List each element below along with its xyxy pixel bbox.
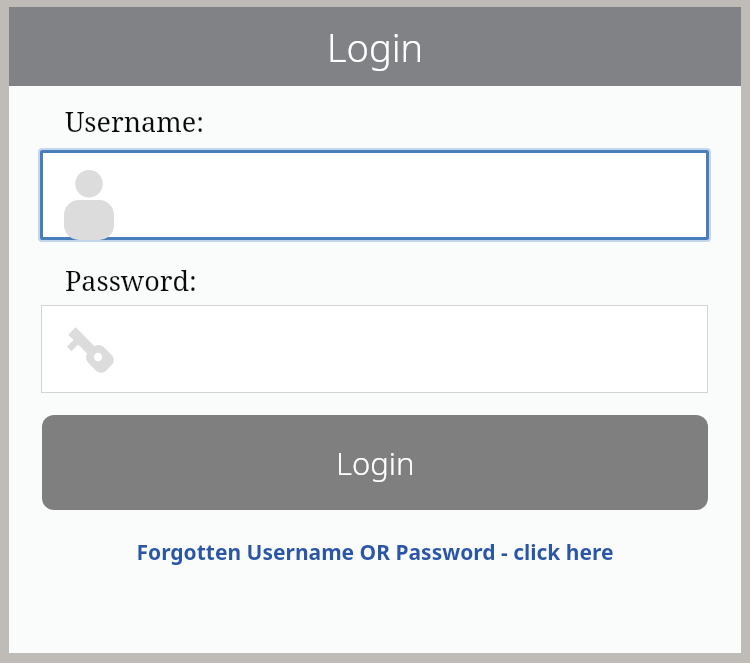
button[interactable]: Forgotten Username OR Password - click h… bbox=[9, 538, 741, 567]
button[interactable]: Password input field bbox=[41, 305, 708, 393]
staticText: Username: bbox=[65, 103, 204, 140]
button[interactable]: Login bbox=[42, 415, 708, 510]
staticText: Password: bbox=[65, 262, 197, 299]
button[interactable]: Username input field bbox=[38, 148, 711, 242]
staticText: Forgotten Username OR Password - click h… bbox=[136, 538, 614, 567]
staticText: Login bbox=[327, 21, 424, 73]
staticText: Login bbox=[336, 442, 415, 484]
